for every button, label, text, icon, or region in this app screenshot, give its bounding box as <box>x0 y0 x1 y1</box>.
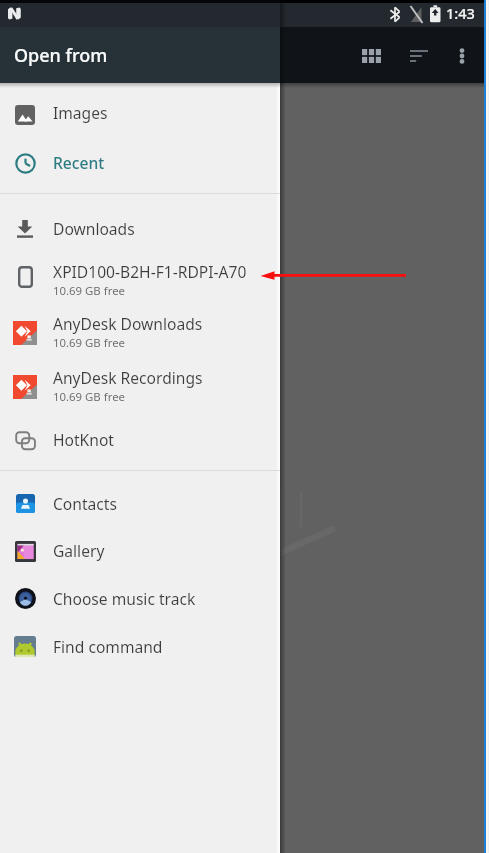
staticText: Find command <box>53 636 163 657</box>
button[interactable]: AnyDesk Recordings <box>0 359 280 413</box>
staticText: 1:43 <box>446 3 475 23</box>
staticText: XPID100-B2H-F1-RDPI-A70 <box>53 261 247 282</box>
button[interactable]: HotKnot <box>0 415 280 463</box>
button[interactable]: Gallery <box>0 526 280 574</box>
staticText: Choose music track <box>53 588 196 609</box>
staticText: 10.69 GB free <box>53 283 125 299</box>
button[interactable]: XPID100-B2H-F1-RDPI-A70 <box>0 253 280 307</box>
button[interactable]: AnyDesk Downloads <box>0 305 280 359</box>
staticText: Open from <box>14 43 108 68</box>
button[interactable]: More options <box>441 33 483 79</box>
button[interactable]: Recent <box>0 138 280 186</box>
staticText: HotKnot <box>53 429 114 450</box>
staticText: Recent <box>53 152 105 173</box>
staticText: AnyDesk Downloads <box>53 313 203 334</box>
staticText: Downloads <box>53 218 135 239</box>
staticText: 10.69 GB free <box>53 335 125 351</box>
staticText: AnyDesk Recordings <box>53 367 203 388</box>
button[interactable]: Contacts <box>0 479 280 527</box>
button[interactable]: Sort <box>398 33 440 79</box>
button[interactable]: Images <box>0 88 280 136</box>
staticText: 10.69 GB free <box>53 389 125 405</box>
button[interactable]: Grid view <box>350 33 392 79</box>
button[interactable]: Find command <box>0 622 280 670</box>
staticText: Contacts <box>53 493 117 514</box>
button[interactable]: Choose music track <box>0 574 280 622</box>
button[interactable]: Downloads <box>0 204 280 252</box>
staticText: Gallery <box>53 540 105 561</box>
staticText: Images <box>53 102 108 123</box>
